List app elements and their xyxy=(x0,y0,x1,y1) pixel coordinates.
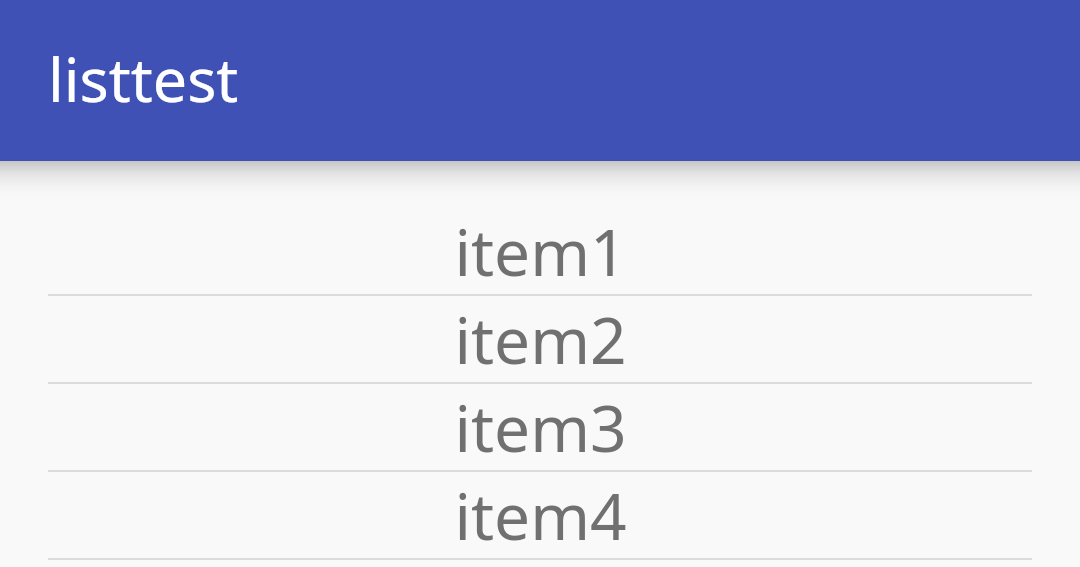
button[interactable]: item2 xyxy=(0,296,1080,384)
staticText: item3 xyxy=(454,384,627,470)
button[interactable]: item4 xyxy=(0,472,1080,560)
staticText: listtest xyxy=(48,37,239,120)
staticText: item2 xyxy=(454,296,627,382)
button[interactable]: item1 xyxy=(0,208,1080,296)
staticText: item4 xyxy=(454,472,627,558)
button[interactable]: item3 xyxy=(0,384,1080,472)
staticText: item1 xyxy=(454,208,627,294)
